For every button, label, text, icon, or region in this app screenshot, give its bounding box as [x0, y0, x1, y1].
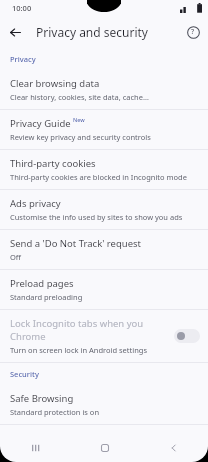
button[interactable]: Third-party cookies: [0, 150, 208, 189]
staticText: Security: [10, 369, 39, 379]
staticText: Chrome: [10, 330, 46, 343]
button[interactable]: Back: [139, 434, 208, 462]
staticText: Send a 'Do Not Track' request: [10, 237, 141, 250]
staticText: Privacy Guide: [10, 117, 71, 130]
staticText: Standard preloading: [10, 292, 83, 302]
button[interactable]: Home: [70, 434, 139, 462]
staticText: Clear history, cookies, site data, cache…: [10, 92, 149, 102]
staticText: ?: [191, 27, 195, 37]
staticText: Third-party cookies: [10, 157, 96, 170]
staticText: Third-party cookies are blocked in Incog…: [10, 172, 187, 182]
button[interactable]: Preload pages: [0, 270, 208, 309]
button[interactable]: Privacy Guide: [0, 110, 208, 149]
button[interactable]: Ads privacy: [0, 190, 208, 229]
staticText: Customise the info used by sites to show…: [10, 212, 183, 222]
staticText: Preload pages: [10, 277, 74, 290]
staticText: Ads privacy: [10, 197, 61, 210]
button[interactable]: Send a 'Do Not Track' request: [0, 230, 208, 269]
button[interactable]: Help: [178, 17, 208, 47]
button[interactable]: Lock Incognito tabs toggle: [174, 329, 200, 343]
staticText: Clear browsing data: [10, 77, 100, 90]
button[interactable]: Lock Incognito tabs when you leave: [0, 310, 208, 362]
staticText: 10:00: [12, 3, 32, 13]
staticText: Turn on screen lock in Android settings: [10, 345, 148, 355]
staticText: Privacy and security: [36, 24, 178, 40]
button[interactable]: Recent apps: [0, 434, 70, 462]
button[interactable]: Clear browsing data: [0, 70, 208, 109]
staticText: Safe Browsing: [10, 392, 74, 405]
staticText: Standard protection is on: [10, 407, 100, 417]
staticText: Review key privacy and security controls: [10, 132, 151, 142]
staticText: Lock Incognito tabs when you leave: [10, 317, 168, 330]
button[interactable]: Safe Browsing: [0, 385, 208, 424]
staticText: Off: [10, 252, 22, 262]
button[interactable]: Back: [0, 17, 30, 47]
staticText: New: [73, 116, 85, 123]
staticText: Privacy: [10, 54, 36, 64]
